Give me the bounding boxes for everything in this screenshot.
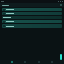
button[interactable]: Tab xyxy=(23,60,27,64)
button[interactable]: Tab xyxy=(37,60,41,64)
button[interactable] xyxy=(2,20,62,23)
button[interactable] xyxy=(2,24,62,28)
button[interactable] xyxy=(2,12,62,15)
button[interactable] xyxy=(2,16,62,19)
button[interactable] xyxy=(2,8,62,11)
button[interactable]: Tab xyxy=(50,60,54,64)
button[interactable]: Home xyxy=(10,60,14,64)
button[interactable]: Add xyxy=(60,54,62,60)
